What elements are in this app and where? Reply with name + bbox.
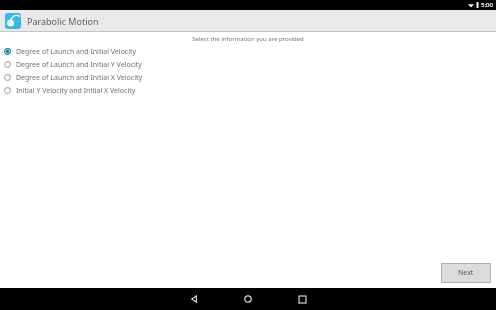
- staticText: 5:00: [481, 1, 493, 9]
- staticText: Initial Y Velocity and Initial X Velocit…: [16, 86, 136, 96]
- button[interactable]: Degree of Launch and Initial Velocity: [0, 45, 496, 58]
- other: App icon: [5, 13, 21, 29]
- button[interactable]: Degree of Launch and Initial Y Velocity: [0, 58, 496, 71]
- staticText: Next: [458, 268, 474, 278]
- button[interactable]: Degree of Launch and Initial X Velocity: [0, 71, 496, 84]
- button[interactable]: Initial Y Velocity and Initial X Velocit…: [0, 84, 496, 97]
- staticText: Degree of Launch and Initial Velocity: [16, 47, 137, 57]
- staticText: Degree of Launch and Initial Y Velocity: [16, 60, 142, 70]
- button[interactable]: Back: [184, 289, 204, 309]
- button[interactable]: Recent apps: [292, 289, 312, 309]
- button[interactable]: Home: [238, 289, 258, 309]
- staticText: Degree of Launch and Initial X Velocity: [16, 73, 143, 83]
- staticText: Parabolic Motion: [27, 15, 99, 27]
- button[interactable]: Next: [441, 263, 491, 283]
- staticText: Select the information you are provided: [0, 35, 496, 43]
